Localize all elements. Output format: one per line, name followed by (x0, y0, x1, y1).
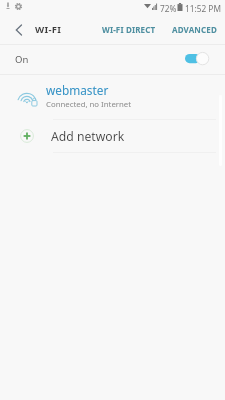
button[interactable]: On (0, 45, 225, 74)
staticText: WI-FI DIRECT (102, 24, 156, 35)
staticText: webmaster (46, 82, 109, 98)
staticText: Connected, no Internet (46, 99, 132, 110)
staticText: 72% (160, 3, 177, 14)
button[interactable]: Navigate up (5, 16, 33, 44)
button[interactable]: ADVANCED (166, 16, 223, 43)
staticText: ADVANCED (172, 24, 217, 35)
staticText: Add network (51, 128, 125, 145)
staticText: 11:52 PM (185, 3, 221, 14)
button[interactable]: Add network (0, 120, 225, 152)
button[interactable]: WI-FI DIRECT (96, 16, 162, 43)
staticText: WI-FI (35, 23, 62, 36)
button[interactable]: webmaster (0, 75, 225, 119)
staticText: On (15, 53, 29, 66)
